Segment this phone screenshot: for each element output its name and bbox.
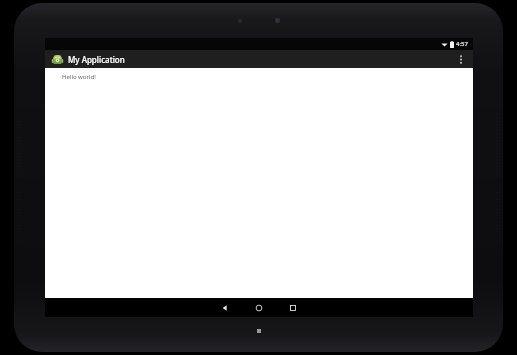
button[interactable]: More options [453,50,469,68]
button[interactable]: Back [208,298,242,317]
button[interactable]: Home [242,298,276,317]
staticText: My Application [68,54,125,65]
staticText: Hello world! [62,73,96,81]
other: App icon [52,54,63,65]
button[interactable]: Recent apps [276,298,310,317]
staticText: 4:57 [456,40,468,48]
